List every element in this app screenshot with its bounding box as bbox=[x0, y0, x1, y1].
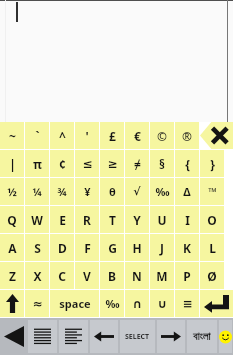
button[interactable]: | bbox=[0, 150, 24, 177]
button[interactable]: Δ bbox=[175, 178, 199, 205]
button[interactable]: J bbox=[150, 234, 174, 261]
staticText: K bbox=[183, 240, 191, 256]
button[interactable]: ¼ bbox=[25, 178, 49, 205]
staticText: ≥ bbox=[107, 157, 118, 171]
staticText: R bbox=[83, 212, 91, 228]
button[interactable]: √ bbox=[125, 178, 149, 205]
staticText: θ bbox=[109, 184, 116, 199]
button[interactable]: € bbox=[125, 122, 149, 149]
staticText: ¢ bbox=[59, 156, 66, 172]
button[interactable]: Q bbox=[0, 206, 24, 233]
button[interactable]: } bbox=[200, 150, 224, 177]
button[interactable]: Move cursor right bbox=[157, 320, 185, 353]
button[interactable]: D bbox=[50, 234, 74, 261]
button[interactable]: P bbox=[175, 262, 199, 289]
staticText: M bbox=[156, 268, 168, 284]
button[interactable]: Z bbox=[0, 262, 24, 289]
button[interactable]: ` bbox=[25, 122, 49, 149]
button[interactable]: ‰ bbox=[150, 178, 174, 205]
button[interactable]: ≡ bbox=[175, 290, 199, 317]
button[interactable]: V bbox=[75, 262, 99, 289]
button[interactable]: M bbox=[150, 262, 174, 289]
staticText: £ bbox=[109, 128, 116, 144]
button[interactable]: ™ bbox=[200, 178, 224, 205]
staticText: { bbox=[185, 156, 190, 172]
button[interactable]: ∩ bbox=[125, 290, 149, 317]
button[interactable]: E bbox=[50, 206, 74, 233]
staticText: ∪ bbox=[157, 297, 167, 311]
button[interactable]: ≤ bbox=[75, 150, 99, 177]
button[interactable]: Select bbox=[120, 320, 155, 353]
button[interactable]: £ bbox=[100, 122, 124, 149]
button[interactable]: Enter bbox=[200, 290, 233, 317]
button[interactable]: Justify text bbox=[28, 320, 57, 353]
button[interactable]: ~ bbox=[0, 122, 24, 149]
button[interactable]: θ bbox=[100, 178, 124, 205]
button[interactable]: π bbox=[25, 150, 49, 177]
staticText: ½ bbox=[7, 184, 17, 199]
button[interactable]: Ø bbox=[200, 262, 224, 289]
button[interactable]: S bbox=[25, 234, 49, 261]
button[interactable]: © bbox=[150, 122, 174, 149]
button[interactable]: Y bbox=[125, 206, 149, 233]
button[interactable]: W bbox=[25, 206, 49, 233]
button[interactable]: X bbox=[25, 262, 49, 289]
staticText: ' bbox=[85, 128, 89, 144]
button[interactable]: H bbox=[125, 234, 149, 261]
button[interactable]: ® bbox=[175, 122, 199, 149]
button[interactable]: Move cursor left bbox=[90, 320, 118, 353]
staticText: ¥ bbox=[84, 184, 91, 199]
staticText: O bbox=[207, 212, 217, 228]
button[interactable]: space bbox=[50, 290, 99, 317]
button[interactable]: O bbox=[200, 206, 224, 233]
staticText: Y bbox=[133, 212, 141, 228]
button[interactable]: I bbox=[175, 206, 199, 233]
button[interactable]: ≥ bbox=[100, 150, 124, 177]
button[interactable]: N bbox=[125, 262, 149, 289]
staticText: | bbox=[9, 156, 16, 172]
button[interactable]: ½ bbox=[0, 178, 24, 205]
button[interactable]: { bbox=[175, 150, 199, 177]
staticText: T bbox=[109, 212, 116, 228]
staticText: © bbox=[157, 128, 167, 144]
staticText: ¼ bbox=[32, 184, 42, 199]
button[interactable]: C bbox=[50, 262, 74, 289]
button[interactable]: ≈ bbox=[25, 290, 49, 317]
staticText: A bbox=[8, 240, 17, 256]
staticText: J bbox=[160, 240, 164, 256]
button[interactable]: Emoji bbox=[219, 320, 232, 353]
staticText: V bbox=[83, 268, 91, 284]
button[interactable]: Backspace bbox=[200, 122, 233, 149]
button[interactable]: T bbox=[100, 206, 124, 233]
button[interactable]: Align text bbox=[59, 320, 88, 353]
button[interactable]: ^ bbox=[50, 122, 74, 149]
button[interactable]: ∪ bbox=[150, 290, 174, 317]
button[interactable]: Bangla language bbox=[187, 320, 217, 353]
button[interactable]: G bbox=[100, 234, 124, 261]
staticText: ¾ bbox=[57, 184, 67, 199]
staticText: ≠ bbox=[134, 156, 141, 172]
staticText: € bbox=[134, 128, 141, 144]
button[interactable]: § bbox=[150, 150, 174, 177]
button[interactable]: ' bbox=[75, 122, 99, 149]
staticText: ≈ bbox=[32, 297, 43, 311]
button[interactable]: ¢ bbox=[50, 150, 74, 177]
button[interactable]: ‰ bbox=[100, 290, 124, 317]
button[interactable]: R bbox=[75, 206, 99, 233]
button[interactable]: F bbox=[75, 234, 99, 261]
staticText: ≤ bbox=[82, 157, 93, 171]
button[interactable]: Shift bbox=[0, 290, 24, 317]
staticText: ≡ bbox=[182, 297, 193, 311]
button[interactable]: ≠ bbox=[125, 150, 149, 177]
button[interactable]: ¥ bbox=[75, 178, 99, 205]
button[interactable]: L bbox=[200, 234, 224, 261]
button[interactable]: U bbox=[150, 206, 174, 233]
button[interactable]: A bbox=[0, 234, 24, 261]
button[interactable]: ¾ bbox=[50, 178, 74, 205]
button[interactable]: Back bbox=[1, 320, 26, 353]
staticText: SELECT bbox=[125, 332, 150, 342]
staticText: Q bbox=[7, 212, 17, 228]
button[interactable]: K bbox=[175, 234, 199, 261]
button[interactable]: B bbox=[100, 262, 124, 289]
staticText: N bbox=[132, 268, 142, 284]
